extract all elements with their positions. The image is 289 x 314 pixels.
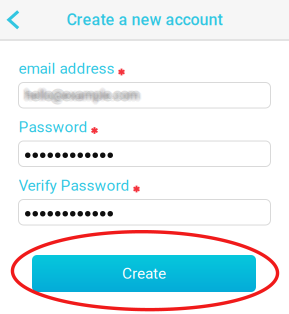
button[interactable]: Back: [7, 10, 37, 30]
staticText: hello@example.com: [25, 86, 139, 101]
staticText: hello@example.com: [22, 88, 136, 103]
staticText: hello@example.com: [26, 86, 140, 101]
staticText: hello@example.com: [26, 88, 140, 103]
staticText: hello@example.com: [24, 86, 138, 101]
staticText: Password: [18, 118, 87, 136]
staticText: hello@example.com: [26, 90, 140, 104]
staticText: hello@example.com: [25, 90, 139, 105]
staticText: Verify Password: [18, 176, 129, 194]
staticText: hello@example.com: [23, 89, 137, 104]
staticText: Create a new account: [66, 10, 222, 29]
staticText: hello@example.com: [23, 87, 137, 101]
button[interactable]: Create a new account: [0, 10, 289, 30]
staticText: hello@example.com: [24, 90, 138, 104]
staticText: hello@example.com: [27, 87, 141, 101]
staticText: email address: [18, 59, 114, 77]
staticText: Create: [122, 264, 166, 282]
button[interactable]: Create: [32, 255, 256, 292]
staticText: hello@example.com: [27, 89, 141, 104]
staticText: hello@example.com: [28, 88, 142, 103]
staticText: hello@example.com: [25, 88, 139, 103]
staticText: hello@example.com: [23, 88, 137, 103]
